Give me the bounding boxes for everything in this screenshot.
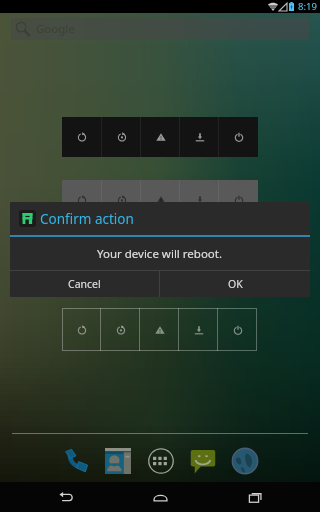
button[interactable] [179,308,218,351]
staticText: Your device will reboot. [97,246,223,262]
button[interactable]: Google [11,18,309,40]
button[interactable] [180,180,219,220]
button[interactable] [141,180,180,220]
button[interactable] [101,308,140,351]
button[interactable] [102,180,141,220]
button[interactable] [141,117,180,157]
staticText: Cancel [68,277,101,291]
button[interactable]: Messaging [187,445,219,477]
button[interactable] [219,117,258,157]
button[interactable]: Recents [225,482,285,512]
button[interactable]: Back [35,482,95,512]
button[interactable] [62,117,102,157]
button[interactable] [102,117,141,157]
button[interactable]: Browser [229,445,261,477]
button[interactable] [180,117,219,157]
button[interactable]: OK [160,271,310,297]
button[interactable] [140,308,179,351]
staticText: Google [36,21,75,37]
button[interactable]: Phone [60,445,92,477]
staticText: OK [228,277,243,291]
button[interactable]: Home [130,482,190,512]
button[interactable] [218,308,257,351]
button[interactable]: People [102,445,134,477]
button[interactable] [62,308,101,351]
staticText: 8:19 [298,0,317,13]
button[interactable] [62,180,102,220]
button[interactable]: Apps [145,445,177,477]
staticText: Confirm action [40,210,134,228]
button[interactable]: Cancel [10,271,159,297]
button[interactable] [219,180,258,220]
